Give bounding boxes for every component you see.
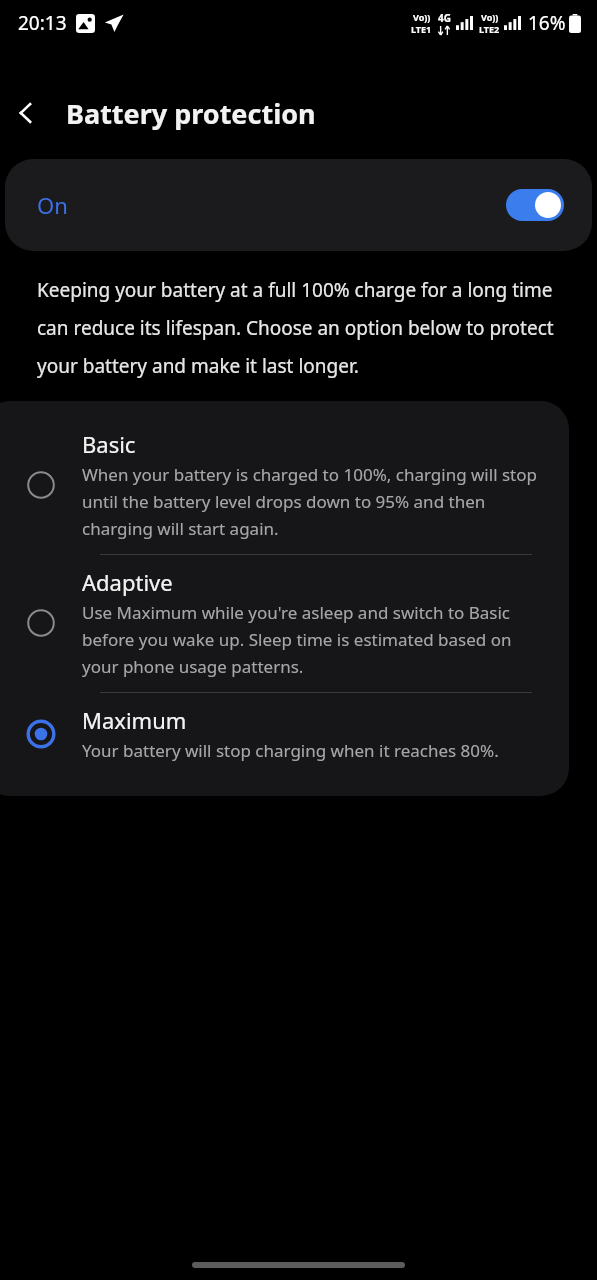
staticText: 20:13 [18,10,67,36]
staticText: Maximum [82,705,187,735]
staticText: On [37,190,68,220]
staticText: 16% [528,10,566,36]
staticText: Vo)) [413,11,431,23]
staticText: LTE1 [411,23,432,35]
staticText: Basic [82,429,136,459]
button[interactable]: On [5,159,592,251]
staticText: LTE2 [479,23,500,35]
button[interactable]: Adaptive [0,555,569,692]
button[interactable]: Basic [0,417,569,554]
staticText: Adaptive [82,567,173,597]
button[interactable]: Maximum [0,693,569,776]
staticText: When your battery is charged to 100%, ch… [82,463,545,540]
staticText: 4G [438,11,451,25]
staticText: Your battery will stop charging when it … [82,739,499,762]
staticText: Use Maximum while you're asleep and swit… [82,601,545,678]
button[interactable]: Back [0,88,52,138]
staticText: Battery protection [66,95,316,132]
staticText: Keeping your battery at a full 100% char… [37,277,560,378]
staticText: Vo)) [481,11,499,23]
